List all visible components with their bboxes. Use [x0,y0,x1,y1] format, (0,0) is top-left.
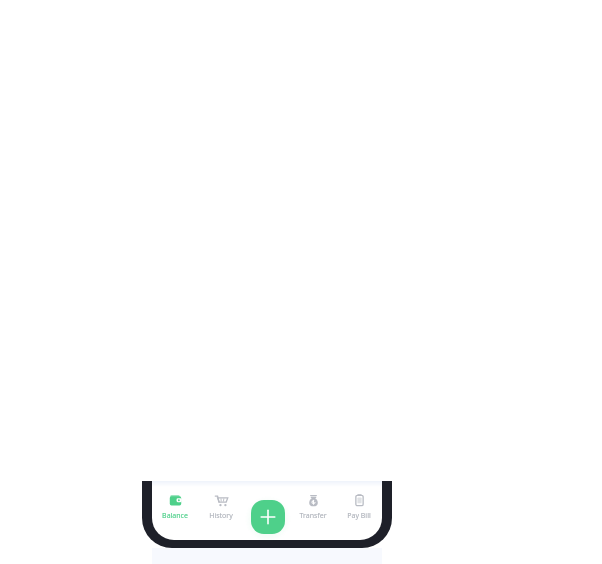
button[interactable]: Pay Bill [336,493,382,533]
staticText: History [209,511,233,521]
staticText: Pay Bill [347,511,371,521]
button[interactable]: History [198,493,244,533]
staticText: Transfer [299,511,327,521]
staticText: Balance [162,511,188,521]
button[interactable]: Add [246,495,290,539]
button[interactable]: Balance [152,493,198,533]
button[interactable]: Transfer [290,493,336,533]
